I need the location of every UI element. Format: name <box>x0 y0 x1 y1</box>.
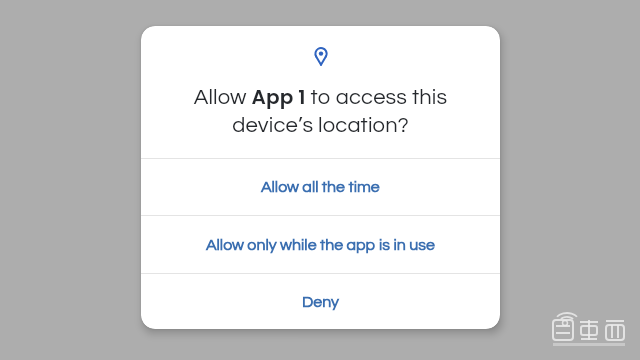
button[interactable]: Allow all the time <box>141 159 500 215</box>
button[interactable]: Allow only while the app is in use <box>141 216 500 273</box>
button[interactable]: Deny <box>141 274 500 329</box>
staticText: Allow App 1 to access this device’s loca… <box>141 83 500 137</box>
staticText: Deny <box>302 294 339 310</box>
staticText: Allow all the time <box>261 179 380 195</box>
staticText: Allow only while the app is in use <box>206 237 435 253</box>
